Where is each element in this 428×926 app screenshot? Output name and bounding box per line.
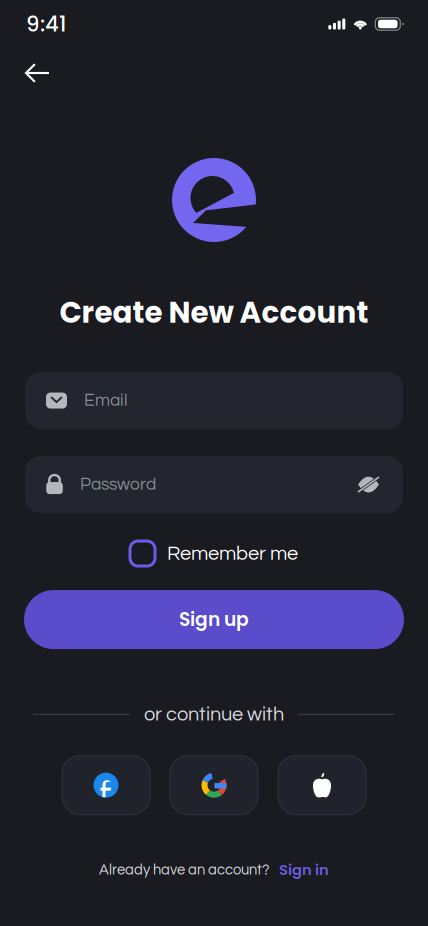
button[interactable]: Continue with Apple (278, 756, 366, 815)
button[interactable]: Back (15, 53, 60, 92)
button[interactable]: Continue with Facebook (62, 756, 150, 815)
staticText: 9:41 (26, 9, 66, 39)
staticText: Create New Account (59, 292, 368, 333)
staticText: Password (80, 476, 156, 493)
staticText: Already have an account? (99, 862, 269, 877)
button[interactable]: Sign in (279, 860, 329, 880)
staticText: Sign in (279, 860, 329, 880)
staticText: Remember me (167, 543, 298, 564)
button[interactable]: Continue with Google (170, 756, 258, 815)
staticText: or continue with (144, 704, 284, 725)
staticText: Sign up (179, 606, 249, 633)
staticText: Email (84, 392, 128, 409)
button[interactable]: Remember me (125, 536, 303, 571)
button[interactable]: Sign up (24, 590, 404, 649)
button[interactable]: Show password (355, 474, 382, 495)
